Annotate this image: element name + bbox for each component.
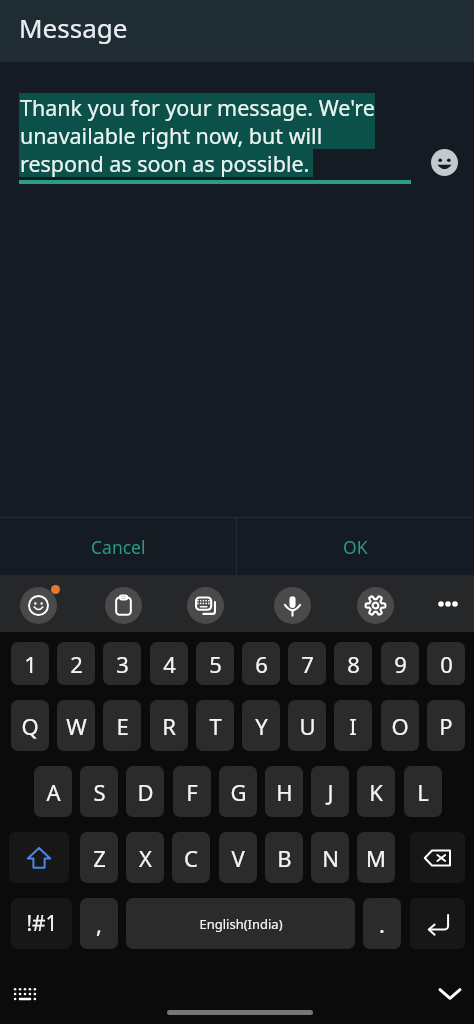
staticText: C [184,843,198,873]
staticText: X [139,843,152,873]
staticText: 4 [163,649,176,679]
button[interactable]: Settings [357,587,394,624]
staticText: Y [255,711,268,741]
button[interactable]: M [357,832,395,883]
staticText: J [327,777,334,807]
button[interactable]: Cancel [0,518,236,575]
button[interactable]: More options [429,575,466,632]
button[interactable]: O [381,700,419,751]
staticText: 2 [70,649,83,679]
staticText: . [379,909,385,939]
staticText: L [417,777,429,807]
staticText: S [93,777,106,807]
button[interactable]: Hide keyboard [437,981,463,1007]
button[interactable]: T [196,700,234,751]
staticText: unavailable right now, but will [20,121,323,149]
staticText: English(India) [199,915,283,933]
staticText: 9 [394,649,407,679]
staticText: U [299,711,316,741]
staticText: N [322,843,339,873]
staticText: M [366,843,386,873]
button[interactable]: English(India) [126,898,355,949]
staticText: 3 [116,649,129,679]
button[interactable]: J [311,766,349,817]
staticText: T [209,711,222,741]
button[interactable]: Emoji [431,149,458,176]
button[interactable]: H [265,766,303,817]
button[interactable]: , [80,898,118,949]
button[interactable]: Y [242,700,280,751]
button[interactable]: S [80,766,118,817]
staticText: F [186,777,198,807]
staticText: 0 [440,649,453,679]
staticText: , [96,909,102,939]
button[interactable]: U [288,700,326,751]
button[interactable]: Shift [9,832,69,883]
button[interactable]: OK [237,518,474,575]
staticText: Thank you for your message. We're [20,93,375,121]
staticText: Z [93,843,106,873]
staticText: P [439,711,453,741]
staticText: O [391,711,409,741]
button[interactable]: 7 [288,642,326,685]
button[interactable]: C [172,832,210,883]
button[interactable]: Z [80,832,118,883]
staticText: A [46,777,61,807]
button[interactable]: Switch keyboard [187,587,224,624]
button[interactable]: L [404,766,442,817]
staticText: B [277,843,292,873]
button[interactable]: 8 [334,642,372,685]
staticText: 1 [24,649,37,679]
button[interactable]: P [427,700,465,751]
staticText: D [137,777,154,807]
button[interactable]: Change keyboard [6,975,44,1013]
staticText: !#1 [26,909,58,938]
staticText: K [369,777,383,807]
staticText: H [276,777,293,807]
button[interactable]: F [173,766,211,817]
staticText: Q [21,711,39,741]
button[interactable]: 9 [381,642,419,685]
staticText: E [116,711,129,741]
button[interactable]: 3 [103,642,141,685]
staticText: V [231,843,245,873]
staticText: 6 [255,649,268,679]
button[interactable]: 4 [150,642,188,685]
button[interactable]: R [150,700,188,751]
button[interactable]: G [219,766,257,817]
button[interactable]: A [34,766,72,817]
button[interactable]: B [265,832,303,883]
button[interactable]: E [103,700,141,751]
staticText: 7 [301,649,314,679]
button[interactable]: 6 [242,642,280,685]
button[interactable]: 5 [196,642,234,685]
button[interactable]: V [219,832,257,883]
staticText: I [349,711,357,741]
staticText: OK [343,535,368,559]
button[interactable]: Enter [410,898,465,949]
button[interactable]: K [357,766,395,817]
staticText: G [230,777,247,807]
button[interactable]: 1 [11,642,49,685]
button[interactable]: W [57,700,95,751]
button[interactable]: 0 [427,642,465,685]
button[interactable]: D [126,766,164,817]
button[interactable]: I [334,700,372,751]
staticText: W [66,711,87,741]
button[interactable]: Backspace [410,832,465,883]
button[interactable]: Emoji [20,587,57,624]
button[interactable]: !#1 [11,898,72,949]
button[interactable]: Q [11,700,49,751]
staticText: Message [19,10,128,45]
staticText: respond as soon as possible. [20,149,310,177]
staticText: R [162,711,176,741]
button[interactable]: . [363,898,401,949]
button[interactable]: N [311,832,349,883]
button[interactable]: Clipboard [105,587,142,624]
staticText: Cancel [91,535,146,559]
staticText: 8 [347,649,360,679]
button[interactable]: X [126,832,164,883]
button[interactable]: Voice input [274,587,311,624]
button[interactable]: 2 [57,642,95,685]
staticText: 5 [209,649,222,679]
